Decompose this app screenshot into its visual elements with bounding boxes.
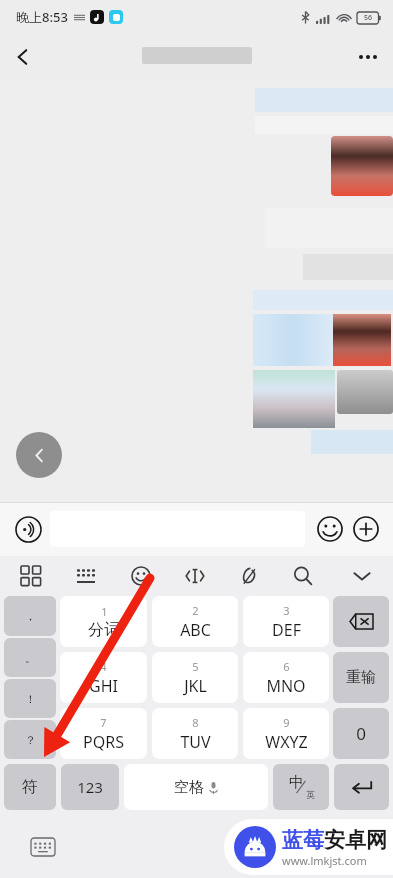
staticText: 重输 <box>346 668 376 687</box>
staticText: 分词 <box>88 620 120 640</box>
button[interactable]: 7 <box>60 708 147 759</box>
button[interactable]: Clipboard <box>232 559 266 593</box>
staticText: www.lmkjst.com <box>282 853 367 868</box>
staticText: JKL <box>184 675 207 697</box>
staticText: 4 <box>100 659 107 674</box>
staticText: TUV <box>180 731 211 753</box>
staticText: 5 <box>192 659 199 674</box>
button[interactable]: ！ <box>4 679 56 718</box>
staticText: 6 <box>283 659 290 674</box>
staticText: ？ <box>25 733 36 747</box>
staticText: 56 <box>364 13 373 23</box>
staticText: 0 <box>356 722 366 745</box>
button[interactable]: More actions <box>349 512 383 546</box>
button[interactable]: 0 <box>333 708 389 759</box>
button[interactable]: Switch Chinese English <box>273 764 329 810</box>
staticText: 2 <box>192 603 199 618</box>
button[interactable]: 重输 <box>333 652 389 703</box>
button[interactable]: Search <box>286 559 320 593</box>
staticText: ABC <box>180 619 211 641</box>
staticText: 123 <box>77 777 103 797</box>
button[interactable]: Backspace <box>333 596 389 647</box>
staticText: 空格 <box>174 778 204 797</box>
button[interactable]: Panels <box>14 559 48 593</box>
button[interactable]: More <box>343 34 393 80</box>
staticText: 3 <box>283 603 290 618</box>
button[interactable]: ？ <box>4 720 56 759</box>
staticText: 1 <box>101 604 108 619</box>
staticText: 英 <box>306 789 315 800</box>
staticText: WXYZ <box>265 731 308 753</box>
staticText: 中 <box>289 773 304 792</box>
button[interactable]: 5 <box>152 652 238 703</box>
button[interactable]: Hide keyboard <box>345 559 379 593</box>
staticText: 7 <box>100 715 107 730</box>
staticText: ！ <box>25 692 36 706</box>
button[interactable]: Back <box>0 34 46 80</box>
button[interactable]: 1 <box>60 596 147 647</box>
button[interactable]: Move cursor <box>178 559 212 593</box>
staticText: 安卓网 <box>324 827 387 853</box>
button[interactable]: Emoji <box>313 512 347 546</box>
staticText: ， <box>25 609 36 623</box>
button[interactable]: 3 <box>243 596 329 647</box>
button[interactable]: Voice input <box>10 511 46 547</box>
button[interactable]: 6 <box>243 652 329 703</box>
button[interactable]: 8 <box>152 708 238 759</box>
button[interactable]: 。 <box>4 638 56 677</box>
button[interactable]: Enter <box>334 764 389 810</box>
button[interactable]: 符 <box>4 764 56 810</box>
staticText: PQRS <box>83 731 124 753</box>
button[interactable]: 2 <box>152 596 238 647</box>
staticText: 晚上8:53 <box>16 8 68 26</box>
button[interactable]: ， <box>4 596 56 636</box>
staticText: 蓝莓 <box>282 827 324 853</box>
button[interactable]: Keyboard layout <box>69 559 103 593</box>
staticText: GHI <box>89 675 118 697</box>
staticText: 。 <box>25 651 36 665</box>
button[interactable]: 9 <box>243 708 329 759</box>
button[interactable]: 4 <box>60 652 147 703</box>
button[interactable]: Keyboard <box>28 836 58 858</box>
staticText: 9 <box>283 715 290 730</box>
button[interactable]: Back to previous <box>16 432 62 478</box>
staticText: 8 <box>192 715 199 730</box>
button[interactable]: 123 <box>61 764 119 810</box>
button[interactable]: 空格 <box>124 764 268 810</box>
staticText: MNO <box>266 675 306 697</box>
staticText: DEF <box>272 619 301 641</box>
staticText: 符 <box>22 777 38 797</box>
button[interactable]: Emoji <box>124 559 158 593</box>
